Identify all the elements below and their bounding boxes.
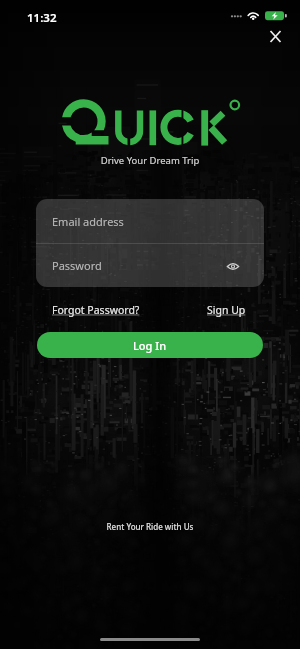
button[interactable]: Forgot Password? xyxy=(52,303,140,317)
button[interactable]: Log In xyxy=(37,332,263,358)
button[interactable]: Close xyxy=(261,22,289,50)
staticText: Email address xyxy=(52,214,124,229)
button[interactable]: Password xyxy=(36,244,264,287)
staticText: Drive Your Dream Trip xyxy=(0,154,300,167)
button[interactable]: Sign Up xyxy=(207,303,246,317)
staticText: Rent Your Ride with Us xyxy=(0,521,300,532)
button[interactable]: Email address xyxy=(36,199,264,243)
button[interactable]: Show password xyxy=(224,257,242,275)
staticText: Log In xyxy=(133,338,167,353)
staticText: Sign Up xyxy=(207,303,246,317)
staticText: Password xyxy=(52,258,102,273)
staticText: Forgot Password? xyxy=(52,303,140,317)
staticText: 11:32 xyxy=(27,10,57,26)
